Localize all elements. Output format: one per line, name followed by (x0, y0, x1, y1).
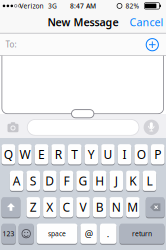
button[interactable]: G (76, 171, 90, 191)
button[interactable]: Z (26, 197, 40, 217)
staticText: D (45, 173, 54, 189)
staticText: Verizon (19, 1, 43, 10)
button[interactable]: U (101, 144, 115, 164)
button[interactable]: Y (85, 144, 98, 164)
staticText: A (13, 173, 21, 189)
staticText: 82% (125, 1, 139, 10)
button[interactable] (2, 197, 20, 217)
staticText: G (79, 173, 88, 189)
button[interactable] (146, 38, 159, 51)
button[interactable] (71, 110, 94, 118)
button[interactable]: D (43, 171, 57, 191)
staticText: C (62, 199, 70, 215)
button[interactable]: O (134, 144, 148, 164)
button[interactable] (146, 197, 164, 217)
button[interactable] (27, 119, 139, 135)
button[interactable]: Cancel (129, 15, 163, 29)
staticText: Z (30, 199, 37, 215)
button[interactable]: V (76, 197, 90, 217)
button[interactable]: H (93, 171, 106, 191)
staticText: R (55, 146, 62, 162)
button[interactable]: W (18, 144, 32, 164)
staticText: @ (85, 227, 93, 240)
staticText: N (112, 199, 121, 215)
staticText: U (103, 146, 112, 162)
button[interactable]: X (43, 197, 57, 217)
button[interactable]: N (109, 197, 123, 217)
button[interactable]: @ (80, 224, 97, 244)
button[interactable]: . (100, 224, 116, 244)
staticText: T (71, 146, 78, 162)
staticText: . (107, 227, 110, 240)
staticText: space (48, 229, 66, 238)
staticText: 3G (48, 1, 57, 10)
staticText: X (46, 199, 53, 215)
button[interactable]: B (93, 197, 106, 217)
staticText: B (96, 199, 104, 215)
staticText: F (63, 173, 69, 189)
staticText: J (115, 173, 118, 189)
button[interactable]: M (126, 197, 140, 217)
staticText: H (95, 173, 104, 189)
button[interactable]: S (26, 171, 40, 191)
button[interactable]: C (60, 197, 73, 217)
staticText: V (80, 199, 87, 215)
staticText: W (19, 146, 30, 162)
staticText: E (38, 146, 45, 162)
button[interactable]: P (151, 144, 164, 164)
staticText: return (132, 229, 152, 238)
button[interactable]: A (10, 171, 23, 191)
staticText: O (137, 146, 146, 162)
button[interactable]: R (51, 144, 65, 164)
button[interactable] (19, 224, 34, 244)
staticText: Y (88, 146, 95, 162)
staticText: 8:47 AM (70, 1, 96, 10)
button[interactable] (144, 120, 159, 135)
staticText: L (146, 173, 152, 189)
button[interactable]: return (120, 224, 164, 244)
button[interactable]: K (126, 171, 140, 191)
button[interactable]: L (143, 171, 156, 191)
staticText: S (30, 173, 37, 189)
staticText: Cancel (129, 15, 163, 29)
button[interactable]: F (60, 171, 73, 191)
button[interactable] (7, 121, 18, 132)
staticText: K (129, 173, 136, 189)
button[interactable]: E (35, 144, 48, 164)
button[interactable]: J (109, 171, 123, 191)
button[interactable]: T (68, 144, 81, 164)
staticText: New Message (47, 15, 118, 29)
button[interactable]: Q (2, 144, 15, 164)
staticText: P (154, 146, 161, 162)
staticText: I (123, 146, 127, 162)
button[interactable]: 123 (2, 224, 16, 244)
staticText: Q (4, 146, 13, 162)
staticText: M (127, 199, 138, 215)
staticText: To: (5, 39, 16, 50)
button[interactable]: space (37, 224, 77, 244)
staticText: 123 (3, 229, 15, 238)
button[interactable]: I (118, 144, 131, 164)
